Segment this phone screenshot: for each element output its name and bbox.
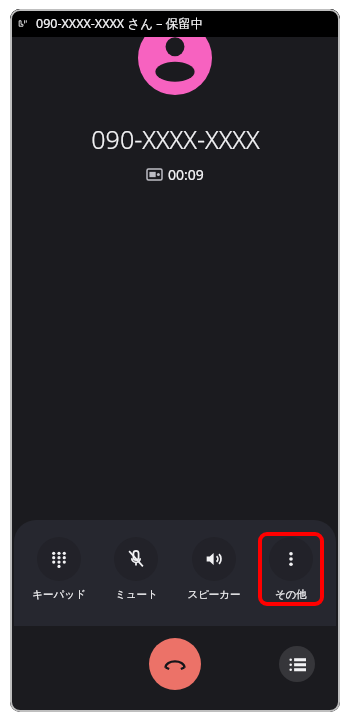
button[interactable]: その他 xyxy=(258,532,324,606)
staticText: 00:09 xyxy=(168,165,204,184)
button[interactable]: キーパッド xyxy=(26,532,92,606)
staticText: その他 xyxy=(275,588,307,601)
staticText: キーパッド xyxy=(32,588,86,601)
staticText: スピーカー xyxy=(187,588,241,601)
staticText: 090-XXXX-XXXX xyxy=(91,122,260,156)
button[interactable]: End call xyxy=(149,638,201,690)
staticText: ミュート xyxy=(115,588,158,601)
button[interactable]: ミュート xyxy=(103,532,169,606)
button[interactable]: スピーカー xyxy=(181,532,247,606)
button[interactable]: Call log xyxy=(279,646,315,682)
staticText: 090-XXXX-XXXX さん – 保留中 xyxy=(36,15,204,32)
